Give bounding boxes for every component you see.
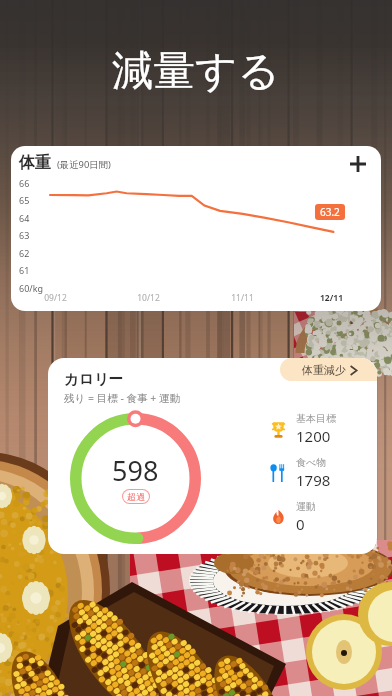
button[interactable]: 体重減少 [280, 358, 377, 381]
staticText: 1200 [296, 426, 331, 446]
staticText: 0 [296, 514, 305, 534]
staticText: 運動 [296, 500, 316, 513]
staticText: 63.2 [320, 205, 340, 219]
staticText: 61 [19, 264, 30, 276]
staticText: 食べ物 [296, 456, 327, 469]
staticText: 62 [19, 247, 30, 259]
staticText: 体重 [19, 153, 51, 173]
staticText: カロリー [64, 370, 124, 388]
staticText: 体重減少 [302, 363, 346, 377]
staticText: 09/12 [44, 292, 67, 304]
button[interactable]: 体重を追加 [345, 151, 371, 177]
staticText: (最近90日間) [57, 158, 111, 171]
staticText: 65 [19, 194, 30, 206]
staticText: 60/kg [19, 282, 43, 294]
staticText: 66 [19, 177, 30, 189]
staticText: 超過 [127, 491, 145, 502]
staticText: 598 [112, 452, 159, 489]
staticText: 残り = 目標 - 食事 + 運動 [64, 391, 181, 405]
staticText: 12/11 [320, 292, 343, 304]
staticText: 11/11 [231, 292, 254, 304]
staticText: 1798 [296, 470, 331, 490]
staticText: 基本目標 [296, 412, 336, 425]
staticText: 減量する [0, 45, 392, 97]
staticText: 10/12 [137, 292, 160, 304]
staticText: 63 [19, 229, 30, 241]
staticText: 64 [19, 212, 30, 224]
